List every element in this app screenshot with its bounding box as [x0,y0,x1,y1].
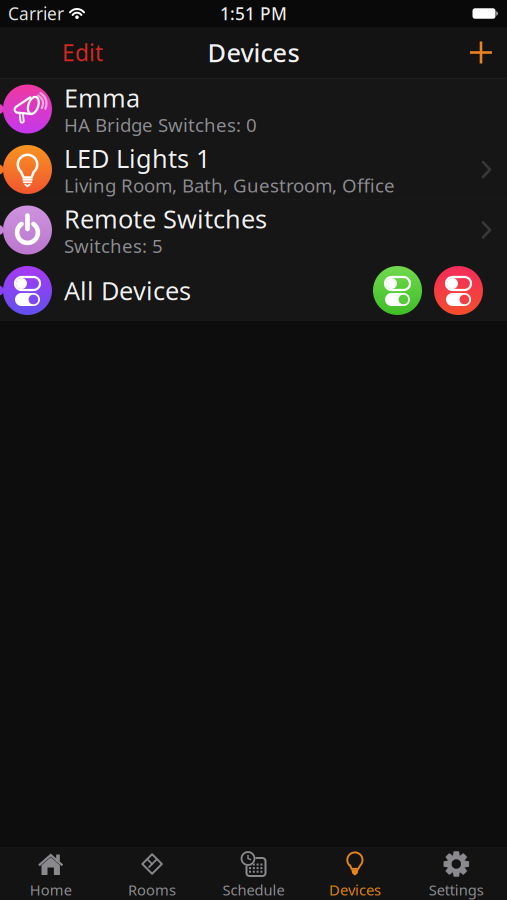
button[interactable]: All off [434,266,483,315]
staticText: Devices [329,880,381,899]
button[interactable]: Devices [304,848,406,900]
staticText: Settings [429,880,484,899]
staticText: 1:51 PM [220,2,287,25]
button[interactable]: Emma [0,79,507,139]
staticText: Home [30,880,72,899]
button[interactable]: LED Lights 1 [0,139,507,199]
button[interactable]: All Devices [0,260,507,320]
button[interactable]: Edit [0,37,103,67]
staticText: Remote Switches [64,202,267,235]
staticText: Schedule [222,880,284,899]
button[interactable]: Settings [406,848,507,900]
staticText: HA Bridge Switches: 0 [64,112,257,137]
button[interactable]: Rooms [101,848,203,900]
staticText: Carrier [8,2,64,25]
staticText: Switches: 5 [64,233,163,258]
button[interactable]: Remote Switches [0,200,507,260]
staticText: LED Lights 1 [64,141,210,175]
button[interactable]: All on [373,266,422,315]
staticText: Emma [64,81,140,114]
staticText: Rooms [128,880,176,899]
staticText: Living Room, Bath, Guestroom, Office [64,173,395,198]
staticText: All Devices [64,274,191,307]
button[interactable]: Add [470,41,507,63]
button[interactable]: Schedule [203,848,304,900]
staticText: Edit [62,37,103,67]
button[interactable]: Home [0,848,101,900]
staticText: Devices [207,36,299,69]
